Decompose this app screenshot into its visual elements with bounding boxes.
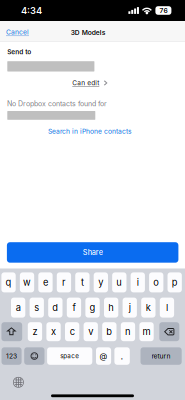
staticText: x [51, 326, 56, 337]
staticText: z [32, 326, 37, 337]
button[interactable]: b [102, 322, 116, 341]
button[interactable]: j [123, 298, 137, 318]
button[interactable]: p [167, 272, 182, 292]
staticText: Cancel [6, 28, 29, 36]
button[interactable]: return [140, 347, 182, 365]
button[interactable]: e [38, 272, 53, 292]
staticText: 76 [159, 6, 167, 15]
button[interactable]: . [114, 347, 130, 365]
button[interactable]: q [1, 272, 16, 292]
button[interactable]: Can edit [69, 77, 111, 89]
staticText: t [81, 277, 84, 288]
staticText: Can edit [72, 79, 99, 87]
staticText: u [116, 277, 122, 288]
button[interactable]: k [141, 298, 155, 318]
button[interactable]: Delete [159, 322, 179, 341]
staticText: return [152, 352, 171, 360]
button[interactable]: i [131, 272, 145, 292]
staticText: v [88, 326, 93, 337]
staticText: a [16, 302, 21, 313]
button[interactable]: Share [7, 242, 178, 263]
button[interactable]: x [46, 322, 61, 341]
staticText: f [72, 302, 75, 313]
staticText: Search in iPhone contacts [48, 127, 132, 135]
staticText: c [70, 326, 75, 337]
button[interactable]: h [104, 298, 118, 318]
staticText: 4:34 [21, 5, 42, 16]
button[interactable]: u [112, 272, 126, 292]
staticText: q [6, 277, 12, 288]
button[interactable]: z [28, 322, 42, 341]
staticText: p [172, 277, 178, 288]
button[interactable]: g [85, 298, 100, 318]
staticText: k [146, 302, 151, 313]
staticText: n [125, 326, 131, 337]
button[interactable]: @ [96, 347, 111, 365]
staticText: j [129, 302, 131, 313]
button[interactable]: Cancel [0, 22, 37, 41]
button[interactable]: f [67, 298, 81, 318]
staticText: Share [83, 248, 103, 257]
button[interactable]: 123 [1, 347, 22, 365]
staticText: r [62, 277, 66, 288]
staticText: h [108, 302, 114, 313]
button[interactable]: Search in iPhone contacts [42, 123, 138, 139]
staticText: d [52, 302, 58, 313]
button[interactable]: c [65, 322, 79, 341]
button[interactable]: s [30, 298, 44, 318]
staticText: m [142, 326, 150, 337]
staticText: e [43, 277, 48, 288]
button[interactable]: a [11, 298, 25, 318]
staticText: w [23, 277, 31, 288]
button[interactable]: n [121, 322, 135, 341]
staticText: Send to [7, 48, 31, 56]
button[interactable]: w [20, 272, 34, 292]
button[interactable]: y [94, 272, 108, 292]
button[interactable]: v [84, 322, 98, 341]
button[interactable]: Emoji [24, 347, 44, 365]
staticText: y [98, 277, 103, 288]
button[interactable]: t [75, 272, 89, 292]
staticText: . [121, 350, 124, 362]
staticText: 123 [6, 352, 17, 360]
staticText: l [166, 302, 168, 313]
button[interactable]: l [160, 298, 174, 318]
staticText: No Dropbox contacts found for [7, 99, 107, 108]
staticText: space [60, 352, 79, 360]
staticText: s [34, 302, 39, 313]
staticText: o [153, 277, 159, 288]
staticText: b [106, 326, 112, 337]
button[interactable]: Next keyboard [10, 374, 27, 391]
button[interactable]: Shift [1, 322, 22, 341]
staticText: @ [100, 351, 108, 361]
button[interactable]: m [139, 322, 154, 341]
button[interactable]: space [47, 347, 92, 365]
button[interactable]: o [149, 272, 163, 292]
staticText: g [90, 302, 96, 313]
button[interactable]: d [48, 298, 62, 318]
button[interactable]: r [57, 272, 71, 292]
staticText: i [137, 277, 139, 288]
staticText: 3D Models [71, 28, 106, 37]
